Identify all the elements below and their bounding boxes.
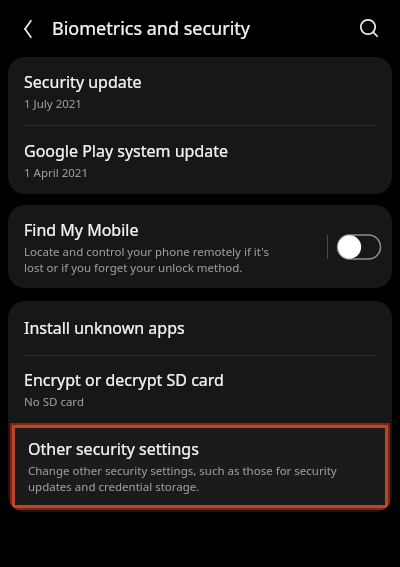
button[interactable]: Find My Mobile [8, 205, 392, 288]
staticText: Find My Mobile [24, 219, 139, 241]
button[interactable]: Security update [8, 57, 392, 125]
button[interactable]: Search [350, 10, 388, 48]
button[interactable]: Install unknown apps [8, 301, 392, 355]
staticText: Change other security settings, such as … [28, 463, 337, 494]
staticText: 1 April 2021 [24, 165, 88, 181]
staticText: Security update [24, 71, 142, 93]
button[interactable]: Encrypt or decrypt SD card [8, 356, 392, 423]
staticText: Biometrics and security [52, 16, 250, 41]
staticText: Install unknown apps [24, 317, 185, 339]
button[interactable]: Other security settings [10, 423, 390, 510]
button[interactable]: Find My Mobile toggle [337, 231, 381, 263]
staticText: Google Play system update [24, 140, 229, 162]
staticText: No SD card [24, 394, 84, 410]
staticText: Encrypt or decrypt SD card [24, 369, 224, 391]
button[interactable]: Back [10, 11, 46, 47]
button[interactable]: Google Play system update [8, 126, 392, 194]
staticText: Locate and control your phone remotely i… [24, 244, 269, 275]
staticText: 1 July 2021 [24, 96, 82, 112]
staticText: Other security settings [28, 438, 199, 460]
